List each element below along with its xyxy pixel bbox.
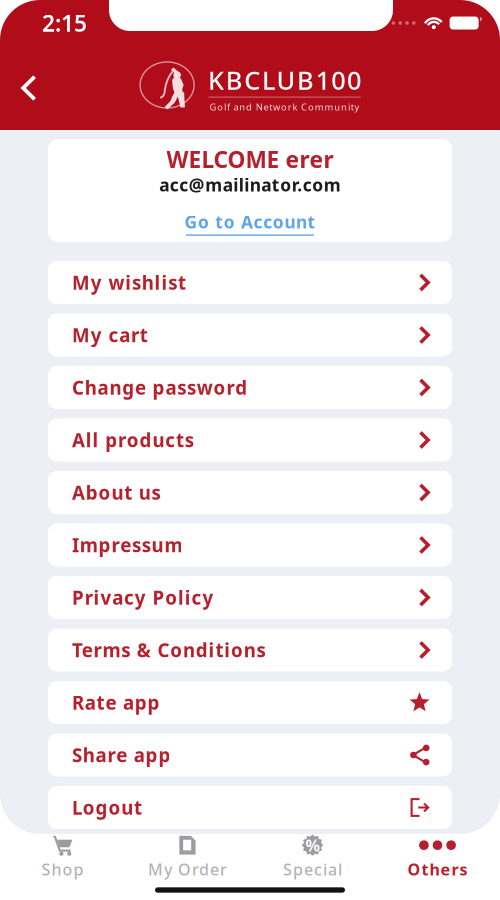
staticText: My Order [148,859,227,880]
staticText: Shop [41,859,83,880]
button[interactable]: Shop [0,833,125,881]
staticText: Others [407,859,467,880]
button[interactable]: Share app [48,733,452,776]
button[interactable]: Change password [48,366,452,409]
button[interactable]: My Order [125,833,250,881]
button[interactable]: All products [48,418,452,461]
button[interactable]: Privacy Policy [48,576,452,619]
button[interactable]: Rate app [48,681,452,724]
staticText: % [305,835,319,856]
staticText: My cart [72,323,148,347]
button[interactable]: My cart [48,313,452,356]
staticText: Go to Account [184,210,316,233]
button[interactable]: % [250,833,375,881]
staticText: Change password [72,375,247,400]
button[interactable]: About us [48,471,452,514]
button[interactable]: My wishlist [48,261,452,304]
button[interactable]: Others [375,833,500,881]
button[interactable]: Logout [48,786,452,829]
button[interactable]: Terms & Conditions [48,628,452,671]
staticText: My wishlist [72,270,186,295]
button[interactable]: Go to Account [184,196,316,236]
staticText: Privacy Policy [72,585,213,610]
button[interactable]: Back [0,57,58,119]
staticText: Share app [72,743,170,767]
staticText: WELCOME erer [166,144,333,174]
staticText: KBCLUB100 [208,63,361,97]
staticText: Logout [72,795,142,820]
staticText: About us [72,480,161,505]
staticText: Special [283,859,342,880]
staticText: 2:15 [42,8,87,38]
staticText: All products [72,428,194,452]
staticText: Terms & Conditions [72,638,266,662]
staticText: acc@mailinator.com [159,173,341,196]
staticText: Rate app [72,690,160,715]
button[interactable]: Impressum [48,523,452,566]
staticText: Impressum [72,533,182,557]
staticText: Golf and Network Community [209,101,359,113]
